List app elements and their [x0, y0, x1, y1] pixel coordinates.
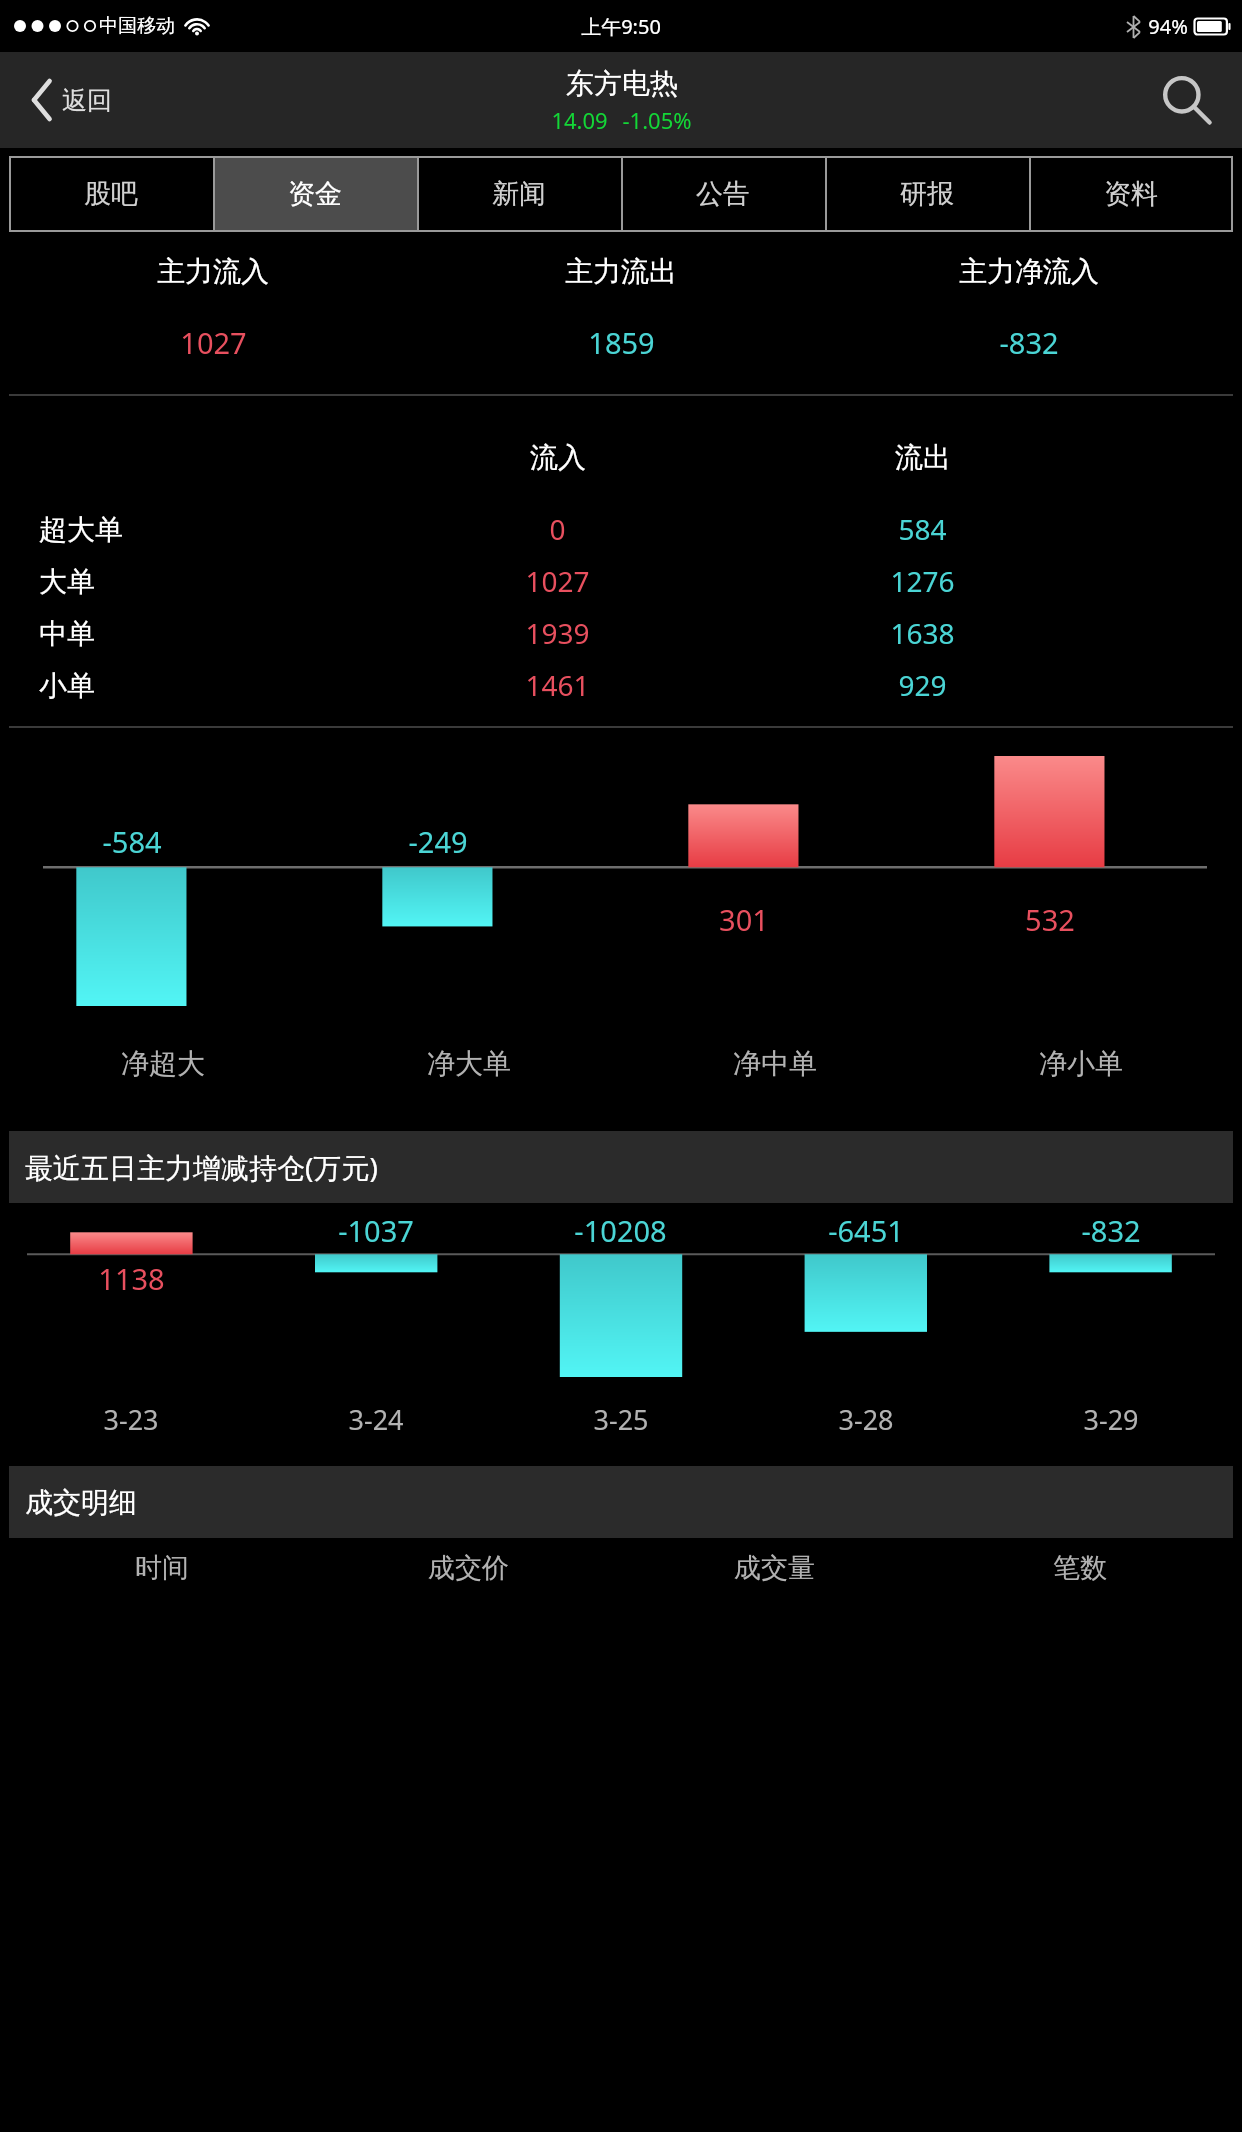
staticText: -832 — [1081, 1211, 1141, 1250]
staticText: 中单 — [39, 616, 95, 651]
staticText: 公告 — [696, 177, 750, 211]
staticText: 流出 — [895, 440, 951, 475]
staticText: 上午9:50 — [581, 13, 661, 40]
staticText: -832 — [999, 323, 1059, 362]
button[interactable]: 资金 — [213, 156, 417, 232]
staticText: 584 — [898, 510, 947, 548]
staticText: 主力流入 — [157, 254, 269, 289]
button[interactable]: 资料 — [1029, 156, 1233, 232]
staticText: 14.09 — [551, 105, 608, 135]
staticText: 1939 — [525, 614, 590, 652]
staticText: 成交量 — [734, 1551, 815, 1585]
staticText: 小单 — [39, 668, 95, 703]
staticText: 532 — [1025, 900, 1075, 939]
staticText: 超大单 — [39, 512, 123, 547]
staticText: 研报 — [900, 177, 954, 211]
staticText: 新闻 — [492, 177, 546, 211]
staticText: 1461 — [525, 666, 590, 704]
staticText: 时间 — [135, 1551, 189, 1585]
staticText: 成交价 — [428, 1551, 509, 1585]
staticText: 中国移动 — [99, 14, 175, 38]
staticText: 主力流出 — [565, 254, 677, 289]
staticText: 3-24 — [348, 1401, 404, 1438]
staticText: 1027 — [525, 562, 590, 600]
staticText: 返回 — [62, 85, 112, 116]
staticText: 东方电热 — [566, 66, 678, 101]
staticText: 3-23 — [103, 1401, 159, 1438]
staticText: 股吧 — [84, 177, 138, 211]
staticText: 成交明细 — [25, 1485, 137, 1520]
staticText: 1276 — [890, 562, 955, 600]
button[interactable]: 公告 — [621, 156, 825, 232]
staticText: -1037 — [338, 1211, 414, 1250]
staticText: -584 — [102, 822, 162, 861]
button[interactable]: 返回 — [24, 72, 120, 128]
staticText: 0 — [549, 510, 566, 548]
staticText: -249 — [408, 822, 468, 861]
staticText: 净大单 — [427, 1046, 511, 1081]
staticText: 净超大 — [121, 1046, 205, 1081]
button[interactable]: 新闻 — [417, 156, 621, 232]
staticText: 1859 — [588, 323, 655, 362]
staticText: 929 — [898, 666, 947, 704]
staticText: 94% — [1148, 13, 1188, 40]
staticText: 301 — [719, 900, 769, 939]
staticText: 净中单 — [733, 1046, 817, 1081]
staticText: 3-29 — [1083, 1401, 1139, 1438]
button[interactable]: 股吧 — [9, 156, 213, 232]
staticText: 主力净流入 — [959, 254, 1099, 289]
staticText: 1138 — [98, 1259, 165, 1298]
staticText: 3-25 — [593, 1401, 649, 1438]
staticText: 资料 — [1104, 177, 1158, 211]
staticText: -6451 — [828, 1211, 904, 1250]
staticText: 资金 — [288, 177, 342, 211]
staticText: 大单 — [39, 564, 95, 599]
button[interactable]: Search — [1154, 68, 1218, 132]
staticText: 净小单 — [1039, 1046, 1123, 1081]
staticText: 笔数 — [1053, 1551, 1107, 1585]
button[interactable]: 研报 — [825, 156, 1029, 232]
staticText: 3-28 — [838, 1401, 894, 1438]
staticText: -1.05% — [622, 105, 692, 135]
staticText: 最近五日主力增减持仓(万元) — [25, 1148, 378, 1186]
staticText: -10208 — [574, 1211, 667, 1250]
staticText: 1638 — [890, 614, 955, 652]
staticText: 流入 — [530, 440, 586, 475]
staticText: 1027 — [180, 323, 247, 362]
